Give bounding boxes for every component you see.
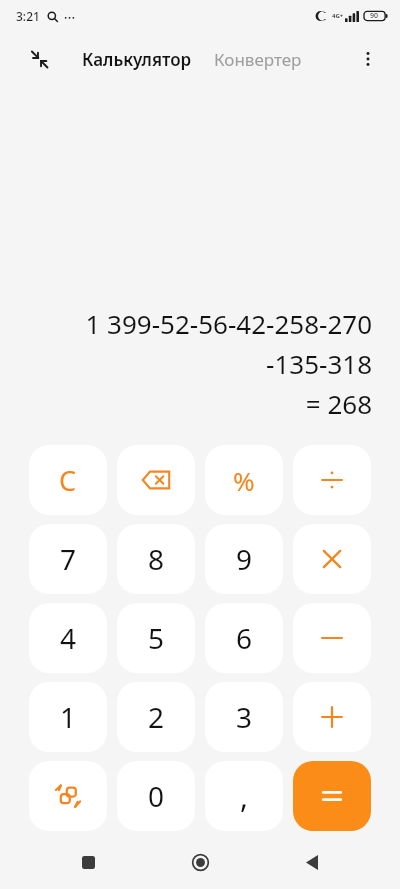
button[interactable]: Convert units <box>29 761 107 831</box>
button[interactable]: Калькулятор <box>80 44 194 75</box>
staticText: = 268 <box>305 386 372 421</box>
button[interactable]: Recent apps <box>64 838 112 886</box>
button[interactable] <box>293 603 371 673</box>
button[interactable]: 8 <box>117 524 195 594</box>
staticText: % <box>233 463 255 498</box>
staticText: 7 <box>60 540 77 578</box>
button[interactable] <box>293 682 371 752</box>
staticText: 4 <box>60 619 77 657</box>
button[interactable]: % <box>205 445 283 515</box>
staticText: 3:21 <box>16 8 40 24</box>
button[interactable]: C <box>29 445 107 515</box>
button[interactable]: Collapse <box>22 42 56 76</box>
button[interactable]: 9 <box>205 524 283 594</box>
staticText: Калькулятор <box>82 48 192 71</box>
staticText: 4G+ <box>332 12 344 20</box>
button[interactable] <box>293 445 371 515</box>
button[interactable]: 5 <box>117 603 195 673</box>
staticText: , <box>240 776 249 817</box>
staticText: 0 <box>148 777 165 815</box>
button[interactable] <box>293 761 371 831</box>
staticText: 8 <box>148 540 165 578</box>
staticText: 2 <box>148 698 165 736</box>
button[interactable]: Home <box>176 838 224 886</box>
staticText: Конвертер <box>214 48 302 71</box>
button[interactable]: 6 <box>205 603 283 673</box>
button[interactable]: 2 <box>117 682 195 752</box>
button[interactable]: 0 <box>117 761 195 831</box>
staticText: 1 <box>60 698 77 736</box>
button[interactable] <box>293 524 371 594</box>
button[interactable]: 4 <box>29 603 107 673</box>
button[interactable]: 7 <box>29 524 107 594</box>
button[interactable]: Backspace <box>117 445 195 515</box>
staticText: 9 <box>236 540 253 578</box>
staticText: -135-318 <box>266 346 372 381</box>
button[interactable]: Конвертер <box>212 44 304 75</box>
staticText: 5 <box>148 619 165 657</box>
staticText: 6 <box>236 619 253 657</box>
button[interactable]: 3 <box>205 682 283 752</box>
staticText: 1 399-52-56-42-258-270 <box>85 306 372 341</box>
button[interactable]: More options <box>348 39 388 79</box>
button[interactable]: , <box>205 761 283 831</box>
button[interactable]: 1 <box>29 682 107 752</box>
staticText: 90 <box>370 11 379 21</box>
staticText: C <box>59 462 77 499</box>
button[interactable]: Back <box>288 838 336 886</box>
staticText: 3 <box>236 698 253 736</box>
